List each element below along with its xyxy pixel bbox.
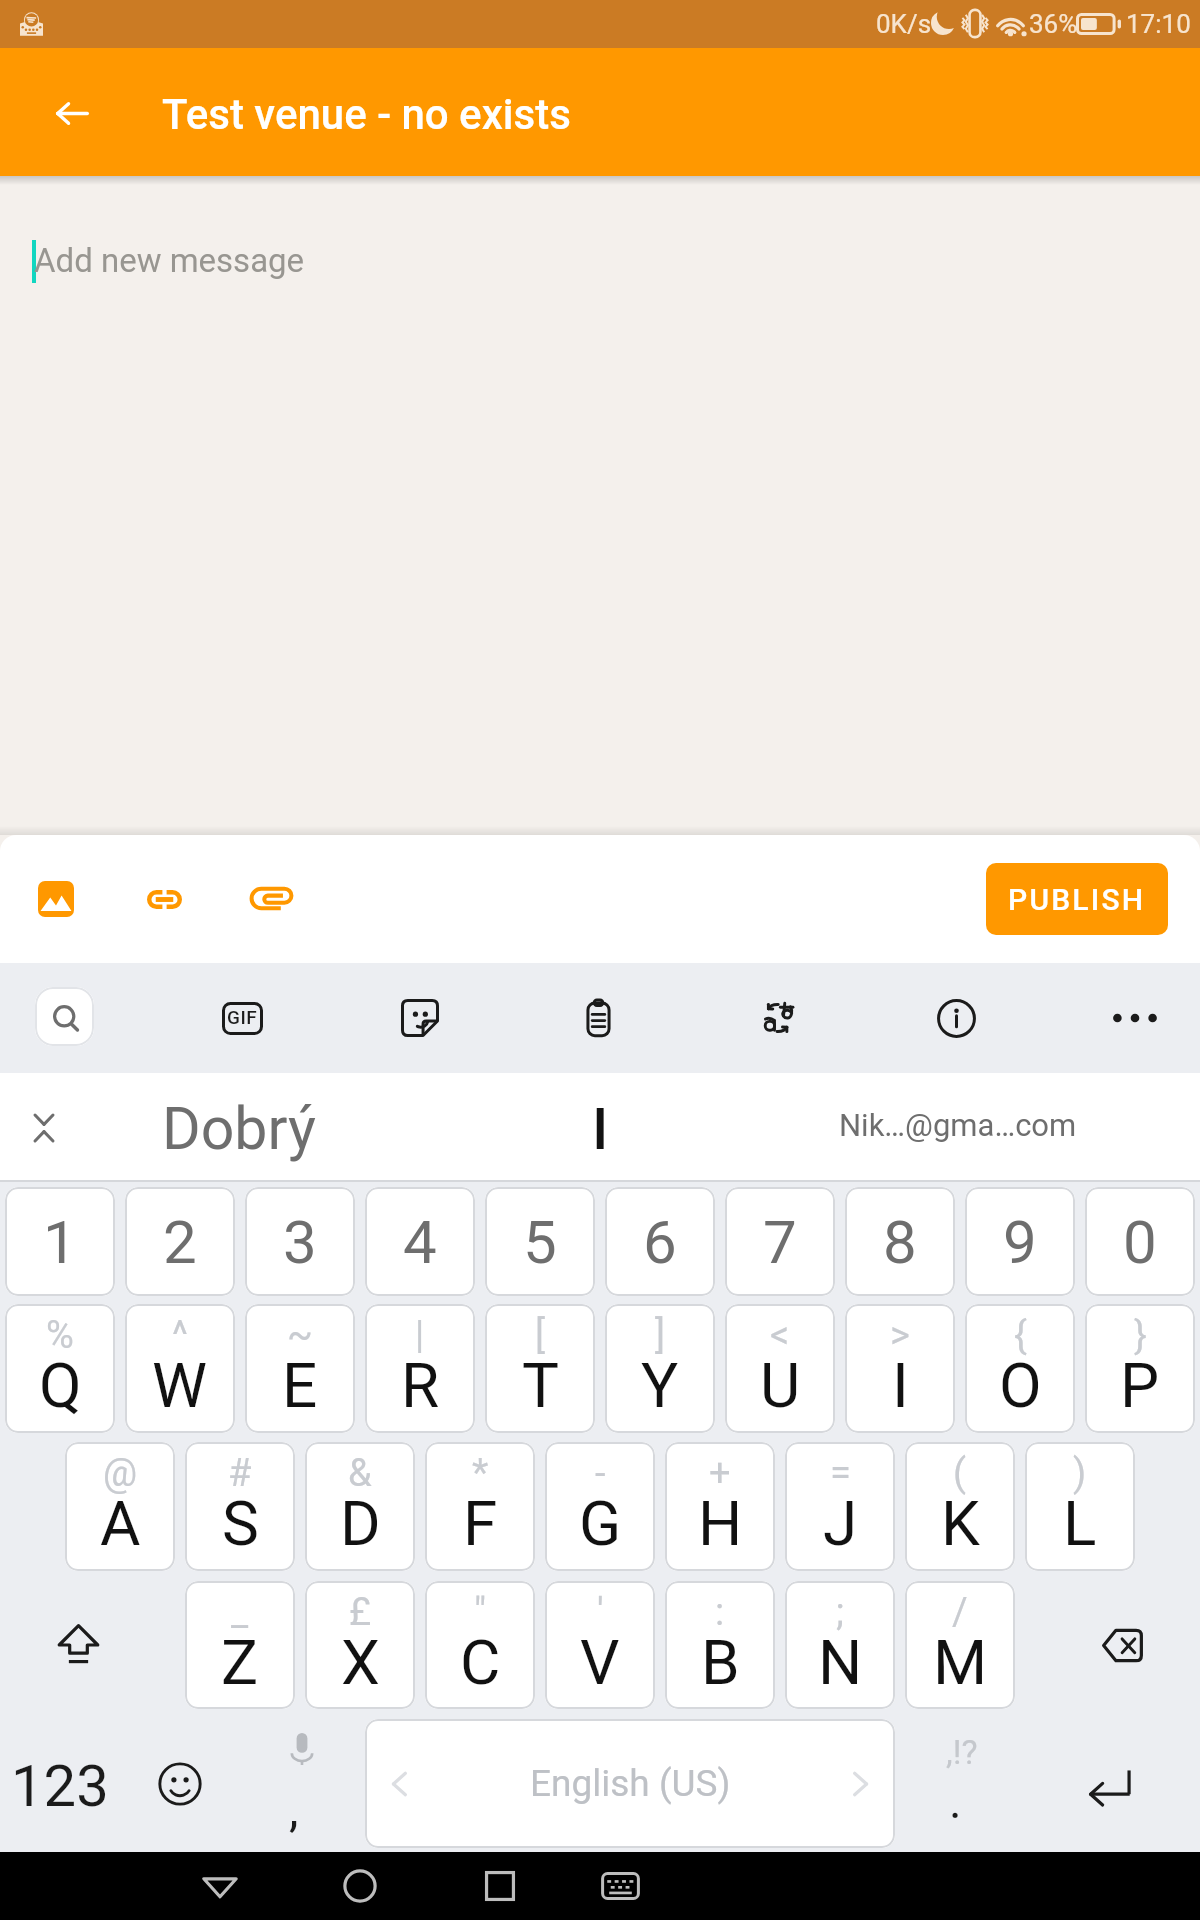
staticText: 123 [11, 1752, 109, 1820]
staticText: A [100, 1487, 141, 1560]
button[interactable]: £ [305, 1581, 415, 1709]
staticText: , [289, 1781, 299, 1837]
button[interactable]: 7 [725, 1187, 835, 1296]
button[interactable]: ] [605, 1304, 715, 1433]
button[interactable]: : [665, 1581, 775, 1709]
button[interactable]: 0 [1085, 1187, 1195, 1296]
button[interactable]: Attach file [232, 860, 308, 936]
button[interactable]: Space [365, 1719, 895, 1848]
button[interactable]: 8 [845, 1187, 955, 1296]
button[interactable]: + [665, 1442, 775, 1571]
button[interactable]: | [365, 1304, 475, 1433]
button[interactable]: 9 [965, 1187, 1075, 1296]
button[interactable]: ) [1025, 1442, 1135, 1571]
button[interactable]: / [905, 1581, 1015, 1709]
button[interactable]: Stickers [376, 963, 464, 1073]
button[interactable]: 5 [485, 1187, 595, 1296]
button[interactable]: > [845, 1304, 955, 1433]
staticText: N [818, 1626, 863, 1699]
button[interactable]: 4 [365, 1187, 475, 1296]
button[interactable]: [ [485, 1304, 595, 1433]
button[interactable]: More options [1091, 963, 1179, 1073]
button[interactable]: % [5, 1304, 115, 1433]
button[interactable]: Translate [733, 963, 821, 1073]
button[interactable]: { [965, 1304, 1075, 1433]
button[interactable]: Emoji [120, 1719, 240, 1848]
button[interactable]: Recent apps [466, 1852, 534, 1920]
staticText: ( [953, 1451, 967, 1496]
staticText: I [892, 1349, 909, 1422]
staticText: ' [597, 1590, 604, 1635]
staticText: G [579, 1487, 622, 1560]
button[interactable]: Nik…@gma…com [798, 1073, 1118, 1182]
button[interactable]: ^ [125, 1304, 235, 1433]
staticText: | [415, 1313, 425, 1358]
button[interactable]: _ [185, 1581, 295, 1709]
button[interactable]: 1 [5, 1187, 115, 1296]
button[interactable]: Back [186, 1852, 254, 1920]
staticText: @ [103, 1451, 138, 1496]
staticText: ~ [287, 1313, 313, 1358]
button[interactable]: ~ [245, 1304, 355, 1433]
staticText: 36% [1029, 9, 1078, 39]
staticText: + [709, 1451, 731, 1496]
button[interactable]: < [725, 1304, 835, 1433]
staticText: S [222, 1487, 259, 1560]
button[interactable]: 6 [605, 1187, 715, 1296]
button[interactable]: Enter [1025, 1719, 1200, 1848]
staticText: U [760, 1349, 801, 1422]
staticText: T [522, 1349, 559, 1422]
staticText: < [770, 1313, 790, 1358]
staticText: - [595, 1451, 606, 1496]
button[interactable]: Insert link [126, 861, 202, 937]
button[interactable]: Voice input [240, 1719, 365, 1848]
button[interactable]: Shift [0, 1581, 185, 1709]
button[interactable]: * [425, 1442, 535, 1571]
staticText: ^ [172, 1313, 188, 1358]
button[interactable]: PUBLISH [986, 863, 1168, 935]
button[interactable]: Info [912, 963, 1000, 1073]
button[interactable]: ; [785, 1581, 895, 1709]
staticText: X [341, 1626, 380, 1699]
staticText: 6 [643, 1207, 677, 1277]
button[interactable]: Clipboard [554, 963, 642, 1073]
button[interactable]: 2 [125, 1187, 235, 1296]
button[interactable]: Navigate up [28, 68, 116, 156]
button[interactable]: Collapse suggestions [4, 1073, 84, 1182]
button[interactable]: Home [326, 1852, 394, 1920]
button[interactable]: ' [545, 1581, 655, 1709]
button[interactable]: ( [905, 1442, 1015, 1571]
staticText: P [1120, 1349, 1160, 1422]
staticText: O [999, 1349, 1042, 1422]
staticText: } [1134, 1313, 1147, 1358]
staticText: % [46, 1313, 74, 1358]
button[interactable]: Dobrý [100, 1073, 380, 1182]
button[interactable]: " [425, 1581, 535, 1709]
button[interactable]: Hide keyboard [586, 1852, 654, 1920]
button[interactable]: # [185, 1442, 295, 1571]
staticText: / [952, 1590, 968, 1635]
staticText: 0 [1123, 1207, 1157, 1277]
button[interactable]: = [785, 1442, 895, 1571]
button[interactable]: Period [895, 1719, 1025, 1848]
button[interactable]: Insert image [18, 861, 94, 937]
button[interactable]: @ [65, 1442, 175, 1571]
staticText: I [592, 1095, 609, 1163]
staticText: " [474, 1590, 487, 1635]
button[interactable]: Backspace [1015, 1581, 1200, 1709]
button[interactable]: - [545, 1442, 655, 1571]
button[interactable]: 3 [245, 1187, 355, 1296]
staticText: L [1063, 1487, 1097, 1560]
staticText: D [340, 1487, 381, 1560]
button[interactable]: I [500, 1073, 700, 1182]
staticText: { [1014, 1313, 1027, 1358]
staticText: 0K/s [876, 9, 932, 39]
staticText: 5 [523, 1207, 557, 1277]
button[interactable]: & [305, 1442, 415, 1571]
staticText: F [463, 1487, 498, 1560]
button[interactable]: Search [35, 987, 94, 1046]
button[interactable]: GIF [198, 963, 286, 1073]
staticText: W [152, 1349, 208, 1422]
button[interactable]: 123 [0, 1719, 120, 1848]
button[interactable]: } [1085, 1304, 1195, 1433]
